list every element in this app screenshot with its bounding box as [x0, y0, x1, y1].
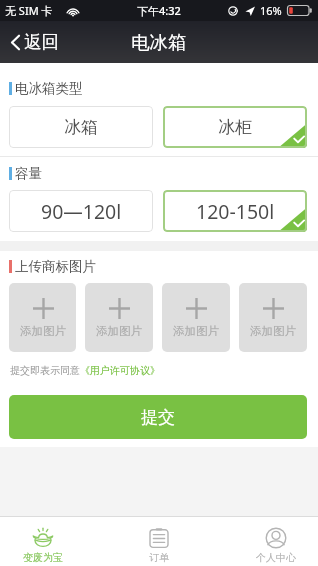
button[interactable]: 冰箱: [9, 106, 153, 148]
button[interactable]: 变废为宝: [0, 517, 96, 566]
staticText: 容量: [15, 165, 42, 182]
staticText: 变废为宝: [23, 551, 63, 564]
staticText: 90—120l: [41, 198, 122, 225]
staticText: 添加图片: [173, 324, 219, 338]
button[interactable]: 返回: [0, 23, 69, 61]
staticText: 电冰箱: [131, 31, 187, 54]
staticText: 添加图片: [96, 324, 142, 338]
button[interactable]: 《用户许可协议》: [80, 364, 160, 377]
staticText: 提交即表示同意: [10, 364, 80, 377]
button[interactable]: 冰柜: [163, 106, 307, 148]
button[interactable]: 添加图片: [85, 283, 153, 352]
button[interactable]: 个人中心: [223, 517, 318, 566]
staticText: 冰柜: [218, 117, 252, 138]
button[interactable]: 添加图片: [239, 283, 307, 352]
button[interactable]: 添加图片: [162, 283, 230, 352]
staticText: 个人中心: [256, 551, 296, 564]
staticText: 返回: [24, 31, 59, 53]
button[interactable]: 提交: [9, 395, 307, 439]
button[interactable]: 订单: [106, 517, 212, 566]
button[interactable]: 120-150l: [163, 190, 307, 232]
staticText: 提交: [141, 407, 175, 428]
button[interactable]: 90—120l: [9, 190, 153, 232]
staticText: 120-150l: [196, 198, 275, 225]
staticText: 订单: [149, 551, 169, 564]
staticText: 添加图片: [20, 324, 66, 338]
staticText: 无 SIM 卡: [5, 3, 53, 18]
staticText: 电冰箱类型: [15, 80, 83, 97]
staticText: 冰箱: [64, 117, 98, 138]
staticText: 16%: [260, 3, 282, 18]
staticText: 添加图片: [250, 324, 296, 338]
staticText: 下午4:32: [137, 3, 181, 18]
staticText: 上传商标图片: [15, 258, 96, 275]
button[interactable]: 添加图片: [9, 283, 76, 352]
